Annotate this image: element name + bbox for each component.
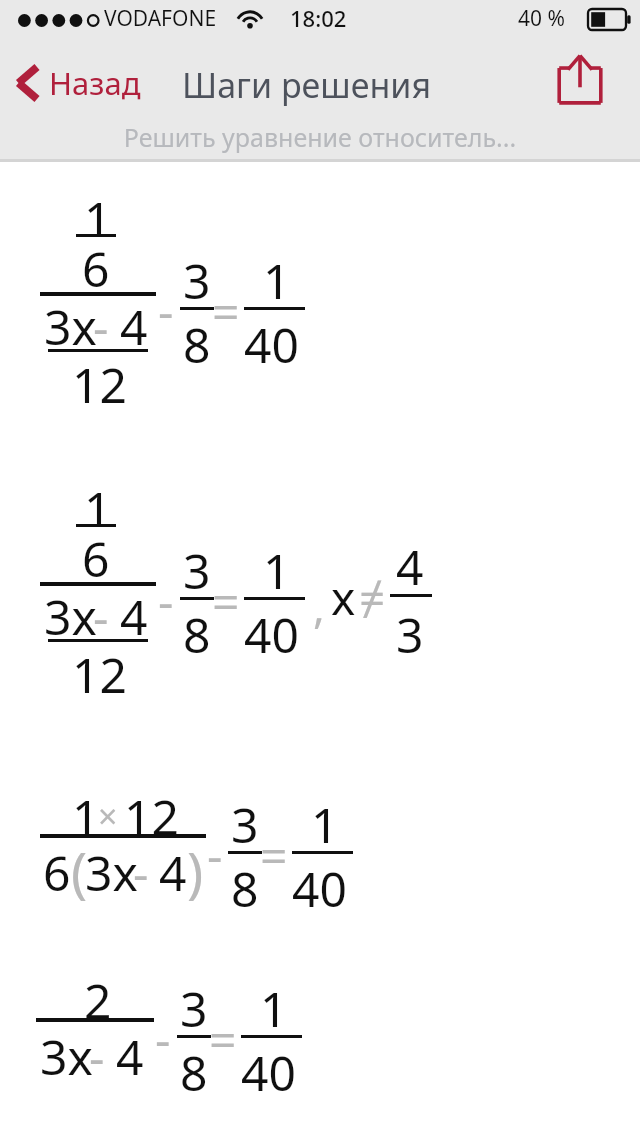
staticText: -	[133, 840, 149, 905]
staticText: 3x	[44, 294, 97, 359]
staticText: 2	[84, 968, 112, 1033]
staticText: 1	[263, 538, 291, 603]
staticText: ,	[313, 576, 325, 636]
staticText: 8	[183, 602, 211, 667]
staticText: 3	[183, 538, 211, 603]
staticText: 3	[183, 248, 211, 313]
staticText: -	[89, 1024, 105, 1089]
staticText: 1	[84, 476, 112, 541]
staticText: 3	[231, 792, 259, 857]
staticText: 3	[396, 602, 424, 667]
staticText: 12	[124, 784, 179, 849]
staticText: ≠	[359, 566, 386, 629]
staticText: ×	[98, 793, 118, 839]
staticText: 8	[183, 312, 211, 377]
staticText: =	[260, 822, 288, 887]
button[interactable]: Назад	[8, 56, 151, 110]
staticText: 6	[43, 840, 71, 905]
staticText: 1	[260, 976, 288, 1041]
staticText: 12	[72, 642, 127, 707]
staticText: 8	[180, 1040, 208, 1105]
staticText: -	[158, 278, 174, 343]
staticText: Решить уравнение относитель...	[0, 120, 640, 154]
staticText: 12	[72, 352, 127, 417]
staticText: Шаги решения	[182, 62, 432, 108]
staticText: 3	[180, 976, 208, 1041]
staticText: -	[155, 1006, 171, 1071]
staticText: VODAFONE	[104, 4, 217, 33]
staticText: 4	[120, 294, 148, 359]
staticText: 4	[116, 1024, 144, 1089]
staticText: =	[209, 1006, 237, 1071]
staticText: 6	[82, 526, 110, 591]
staticText: 40	[241, 1040, 296, 1105]
staticText: 1	[84, 186, 112, 251]
staticText: -	[207, 822, 223, 887]
staticText: 3x	[40, 1024, 93, 1089]
staticText: 6	[82, 236, 110, 301]
staticText: =	[212, 568, 240, 633]
staticText: -	[93, 584, 109, 649]
staticText: =	[212, 278, 240, 343]
staticText: 1	[311, 792, 339, 857]
staticText: 4	[159, 840, 187, 905]
button[interactable]: Share	[550, 50, 610, 110]
staticText: 40 %	[518, 4, 565, 33]
staticText: 4	[396, 534, 424, 599]
staticText: Назад	[49, 62, 141, 104]
staticText: 40	[244, 312, 299, 377]
staticText: )	[187, 834, 204, 908]
staticText: 3x	[44, 584, 97, 649]
staticText: -	[93, 294, 109, 359]
staticText: 8	[231, 856, 259, 921]
staticText: 4	[120, 584, 148, 649]
staticText: (	[71, 834, 88, 908]
staticText: 3x	[85, 840, 138, 905]
staticText: 40	[244, 602, 299, 667]
staticText: 40	[292, 856, 347, 921]
staticText: -	[158, 568, 174, 633]
staticText: 1	[263, 248, 291, 313]
staticText: 1	[72, 784, 100, 849]
staticText: 18:02	[290, 3, 347, 33]
staticText: x	[331, 566, 356, 629]
